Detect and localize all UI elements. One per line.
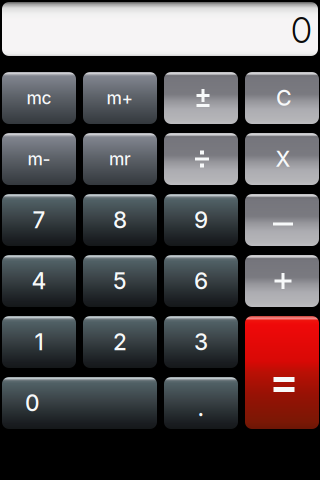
button[interactable]: [83, 133, 157, 185]
button[interactable]: [164, 316, 238, 368]
button[interactable]: [2, 72, 76, 124]
button[interactable]: Divide: [164, 133, 238, 185]
button[interactable]: Minus: [245, 194, 319, 246]
button[interactable]: [245, 72, 319, 124]
staticText: C: [276, 85, 292, 111]
staticText: 4: [31, 267, 46, 295]
staticText: 0: [25, 389, 40, 417]
button[interactable]: [2, 377, 157, 429]
button[interactable]: [2, 194, 76, 246]
staticText: 8: [113, 206, 127, 234]
button[interactable]: Equals: [245, 316, 319, 429]
staticText: mr: [109, 148, 131, 169]
button[interactable]: [83, 255, 157, 307]
staticText: 3: [194, 328, 208, 356]
staticText: m+: [106, 87, 133, 108]
button[interactable]: [83, 194, 157, 246]
staticText: 1: [34, 328, 43, 356]
button[interactable]: [245, 133, 319, 185]
button[interactable]: Plus minus: [164, 72, 238, 124]
button[interactable]: Plus: [245, 255, 319, 307]
staticText: 5: [113, 267, 127, 295]
staticText: .: [197, 394, 204, 422]
staticText: 2: [113, 328, 127, 356]
button[interactable]: [2, 255, 76, 307]
staticText: 6: [194, 267, 208, 295]
button[interactable]: [83, 72, 157, 124]
button[interactable]: [2, 316, 76, 368]
button[interactable]: [164, 377, 238, 429]
button[interactable]: [2, 133, 76, 185]
button[interactable]: [164, 255, 238, 307]
staticText: 7: [32, 206, 45, 234]
button[interactable]: [164, 194, 238, 246]
staticText: 0: [291, 9, 312, 51]
staticText: X: [275, 146, 290, 172]
button[interactable]: [83, 316, 157, 368]
staticText: m-: [27, 148, 50, 169]
staticText: 9: [194, 206, 208, 234]
staticText: mc: [26, 87, 51, 108]
